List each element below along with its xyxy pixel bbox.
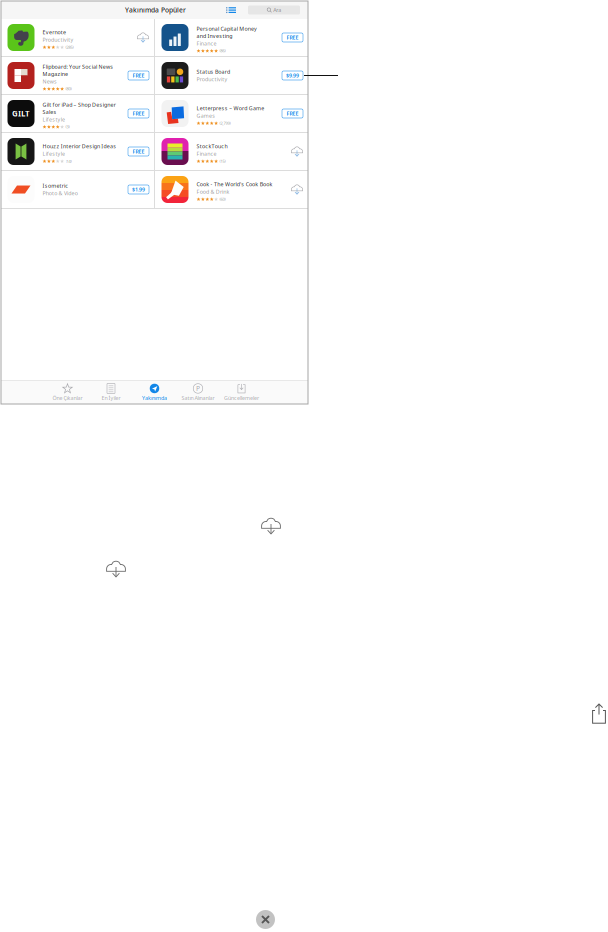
staticText: Yakınımda: [142, 394, 167, 402]
button[interactable]: FREE: [282, 33, 303, 42]
staticText: and Investing: [196, 32, 232, 39]
staticText: StockTouch: [196, 143, 227, 150]
staticText: Personal Capital Money: [196, 25, 257, 32]
staticText: News: [42, 78, 57, 85]
button[interactable]: Letterpress – Word Game: [155, 95, 308, 133]
staticText: Cook - The World's Cook Book: [196, 181, 272, 188]
button[interactable]: Status Board: [155, 57, 308, 95]
button[interactable]: FREE: [128, 147, 149, 156]
button[interactable]: Ara: [248, 5, 300, 14]
staticText: Sales: [42, 108, 56, 115]
staticText: P: [196, 384, 200, 393]
staticText: Letterpress – Word Game: [196, 105, 264, 112]
staticText: Photo & Video: [42, 190, 78, 197]
button[interactable]: Houzz Interior Design Ideas: [1, 133, 154, 171]
button[interactable]: Cook - The World's Cook Book: [155, 171, 308, 209]
staticText: (15): [219, 158, 225, 164]
button[interactable]: FREE: [282, 109, 303, 118]
staticText: (3): [65, 124, 69, 129]
button[interactable]: En İyiler: [89, 380, 133, 404]
button[interactable]: Güncellemeler: [220, 380, 263, 404]
button[interactable]: $9.99: [282, 71, 303, 80]
staticText: FREE: [286, 110, 298, 117]
staticText: FREE: [132, 110, 144, 117]
staticText: Magazine: [42, 70, 68, 77]
button[interactable]: Flipboard: Your Social News: [1, 57, 154, 95]
staticText: Games: [196, 112, 215, 119]
button[interactable]: FREE: [128, 71, 149, 80]
staticText: $1.99: [132, 186, 145, 193]
staticText: Finance: [196, 40, 217, 47]
staticText: Gilt for iPad – Shop Designer: [42, 101, 116, 108]
staticText: (2,799): [219, 120, 230, 126]
staticText: (285): [65, 44, 73, 50]
staticText: Houzz Interior Design Ideas: [42, 143, 116, 150]
staticText: Productivity: [42, 36, 73, 43]
staticText: Güncellemeler: [224, 394, 259, 402]
staticText: (80): [65, 86, 71, 91]
button[interactable]: GILT: [1, 95, 154, 133]
staticText: Food & Drink: [196, 188, 229, 195]
button[interactable]: Personal Capital Money: [155, 19, 308, 57]
button[interactable]: Öne Çıkanlar: [46, 380, 89, 404]
staticText: Ara: [273, 6, 281, 14]
staticText: En İyiler: [101, 394, 120, 402]
staticText: Öne Çıkanlar: [52, 394, 82, 402]
staticText: Yakınımda Popüler: [125, 6, 186, 14]
staticText: (86): [219, 48, 225, 53]
staticText: (60): [219, 196, 225, 202]
staticText: Evernote: [42, 29, 66, 36]
button[interactable]: Kapat: [256, 910, 275, 929]
staticText: Lifestyle: [42, 150, 65, 157]
button[interactable]: Liste görünümü: [223, 1, 239, 19]
button[interactable]: $1.99: [128, 185, 149, 194]
button[interactable]: StockTouch: [155, 133, 308, 171]
staticText: Status Board: [196, 68, 230, 75]
button[interactable]: Yakınımda: [133, 380, 176, 404]
button[interactable]: Isometric: [1, 171, 154, 209]
staticText: $9.99: [286, 72, 299, 79]
staticText: FREE: [132, 148, 144, 155]
staticText: Productivity: [196, 76, 227, 83]
button[interactable]: FREE: [128, 109, 149, 118]
staticText: FREE: [286, 34, 298, 41]
staticText: Finance: [196, 150, 217, 157]
staticText: Flipboard: Your Social News: [42, 63, 113, 70]
staticText: FREE: [132, 72, 144, 79]
staticText: Lifestyle: [42, 116, 65, 123]
button[interactable]: Evernote: [1, 19, 154, 57]
staticText: Isometric: [42, 182, 68, 189]
staticText: (14): [65, 158, 71, 164]
staticText: GILT: [12, 108, 30, 119]
button[interactable]: Paylaş: [592, 703, 606, 724]
staticText: Satın Alınanlar: [181, 394, 214, 402]
button[interactable]: P: [176, 380, 220, 404]
